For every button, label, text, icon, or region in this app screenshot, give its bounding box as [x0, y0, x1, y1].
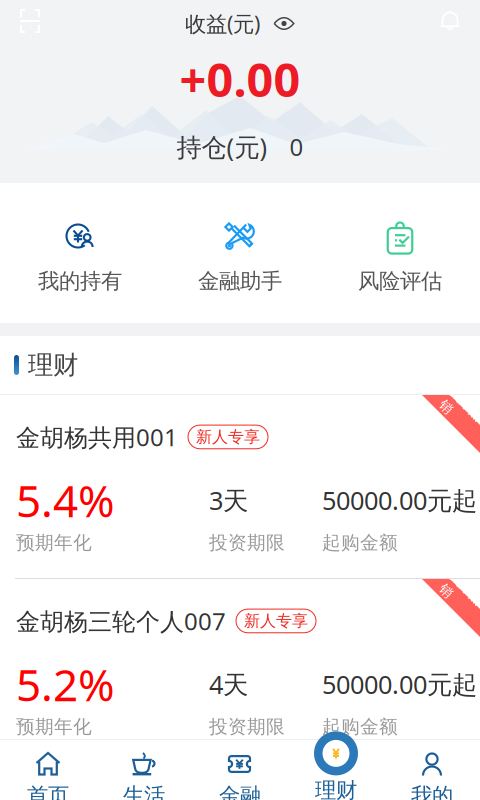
- button[interactable]: 风险评估: [320, 183, 480, 323]
- staticText: 风险评估: [358, 268, 442, 294]
- staticText: 5.4%: [16, 471, 115, 529]
- staticText: 持仓(元): [176, 130, 267, 164]
- staticText: 收益(元): [185, 9, 260, 38]
- button[interactable]: Toggle balance visibility: [273, 15, 295, 31]
- button[interactable]: 生活: [96, 738, 192, 799]
- staticText: 3天: [209, 483, 248, 517]
- button[interactable]: 金胡杨共用001: [0, 395, 480, 578]
- staticText: 预期年化: [16, 531, 92, 554]
- staticText: 金融: [219, 782, 261, 800]
- staticText: 0: [289, 131, 303, 163]
- staticText: 金融助手: [198, 268, 282, 294]
- staticText: 理财: [28, 349, 78, 380]
- button[interactable]: Notifications: [432, 3, 468, 39]
- staticText: 理财: [315, 777, 357, 800]
- button[interactable]: 金融: [192, 738, 288, 799]
- staticText: 投资期限: [209, 531, 285, 554]
- button[interactable]: 理财: [288, 736, 384, 799]
- button[interactable]: 首页: [0, 738, 96, 799]
- staticText: 金胡杨共用001: [16, 421, 178, 453]
- staticText: 金胡杨三轮个人007: [16, 605, 226, 637]
- staticText: 预期年化: [16, 715, 92, 738]
- staticText: 5.2%: [16, 655, 115, 713]
- button[interactable]: 金融助手: [160, 183, 320, 323]
- button[interactable]: 我的: [384, 738, 480, 799]
- staticText: 50000.00元起: [322, 667, 477, 701]
- button[interactable]: 金胡杨三轮个人007: [0, 579, 480, 762]
- staticText: 50000.00元起: [322, 483, 477, 517]
- staticText: 火爆热销: [441, 394, 480, 426]
- staticText: 新人专享: [244, 611, 308, 631]
- staticText: +0.00: [179, 48, 300, 110]
- staticText: 起购金额: [322, 531, 398, 554]
- staticText: 火爆热销: [441, 578, 480, 610]
- staticText: 新人专享: [196, 427, 260, 447]
- staticText: 我的: [411, 782, 453, 800]
- staticText: 首页: [27, 782, 69, 800]
- button[interactable]: 我的持有: [0, 183, 160, 323]
- staticText: 投资期限: [209, 715, 285, 738]
- staticText: 我的持有: [38, 268, 122, 294]
- button[interactable]: Scan: [12, 3, 48, 39]
- staticText: 生活: [123, 782, 165, 800]
- staticText: 4天: [209, 667, 248, 701]
- staticText: 起购金额: [322, 715, 398, 738]
